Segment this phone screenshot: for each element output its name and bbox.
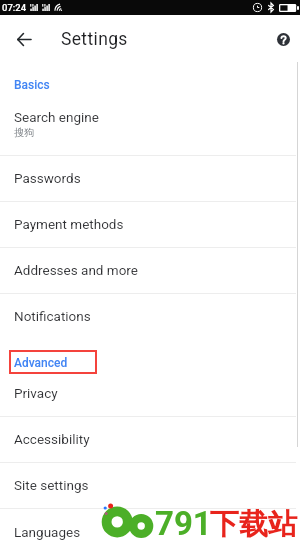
button[interactable]: Languages	[0, 509, 300, 546]
staticText: Site settings	[14, 477, 89, 493]
button[interactable]: Addresses and more	[0, 248, 300, 293]
button[interactable]: Passwords	[0, 156, 300, 201]
button[interactable]: Advanced	[0, 340, 300, 372]
staticText: 下载站	[210, 506, 297, 543]
staticText: Payment methods	[14, 216, 124, 232]
button[interactable]: Back	[9, 24, 39, 54]
staticText: Passwords	[14, 170, 81, 186]
staticText: Settings	[61, 29, 128, 50]
button[interactable]: Privacy	[0, 372, 300, 416]
button[interactable]: Accessibility	[0, 417, 300, 462]
staticText: Accessibility	[14, 431, 90, 447]
button[interactable]: Notifications	[0, 294, 300, 340]
button[interactable]: Site settings	[0, 463, 300, 508]
button[interactable]: Basics	[0, 62, 300, 98]
staticText: Notifications	[14, 308, 91, 324]
staticText: Addresses and more	[14, 262, 138, 278]
staticText: Basics	[14, 78, 50, 92]
staticText: 791	[155, 504, 212, 543]
button[interactable]: Help	[269, 25, 297, 53]
staticText: Languages	[14, 524, 81, 540]
staticText: 搜狗	[14, 126, 34, 139]
staticText: Advanced	[14, 356, 68, 370]
button[interactable]: Search engine	[0, 98, 300, 155]
staticText: Search engine	[14, 109, 99, 125]
staticText: 07:24	[2, 2, 27, 13]
button[interactable]: Payment methods	[0, 202, 300, 247]
staticText: Privacy	[14, 385, 58, 401]
